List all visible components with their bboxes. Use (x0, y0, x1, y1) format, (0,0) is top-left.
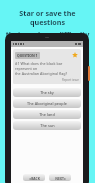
button[interactable]: The land (13, 110, 81, 119)
staticText: Report issue (62, 78, 79, 82)
button[interactable]: Report issue (62, 78, 79, 82)
button[interactable]: The sun (13, 121, 81, 130)
staticText: NEXT» (55, 176, 66, 180)
staticText: #1 What does the black bar represent on (15, 61, 79, 71)
staticText: «BACK (29, 176, 40, 180)
staticText: that you have difficulty with (4, 29, 91, 48)
button[interactable]: The sky (13, 88, 81, 97)
staticText: Star or save the questions (4, 8, 91, 27)
staticText: The land (39, 112, 55, 117)
button[interactable]: Star question (71, 51, 79, 59)
button[interactable]: QUESTION 1 (15, 52, 40, 59)
staticText: The Aboriginal people (27, 101, 67, 106)
button[interactable]: «BACK (23, 174, 45, 181)
staticText: QUESTION 1 (17, 53, 38, 58)
button[interactable]: NEXT» (49, 174, 71, 181)
button[interactable]: The Aboriginal people (13, 99, 81, 108)
staticText: The sun (40, 123, 55, 128)
staticText: the Australian Aboriginal flag? (15, 71, 68, 76)
staticText: The sky (40, 90, 54, 95)
